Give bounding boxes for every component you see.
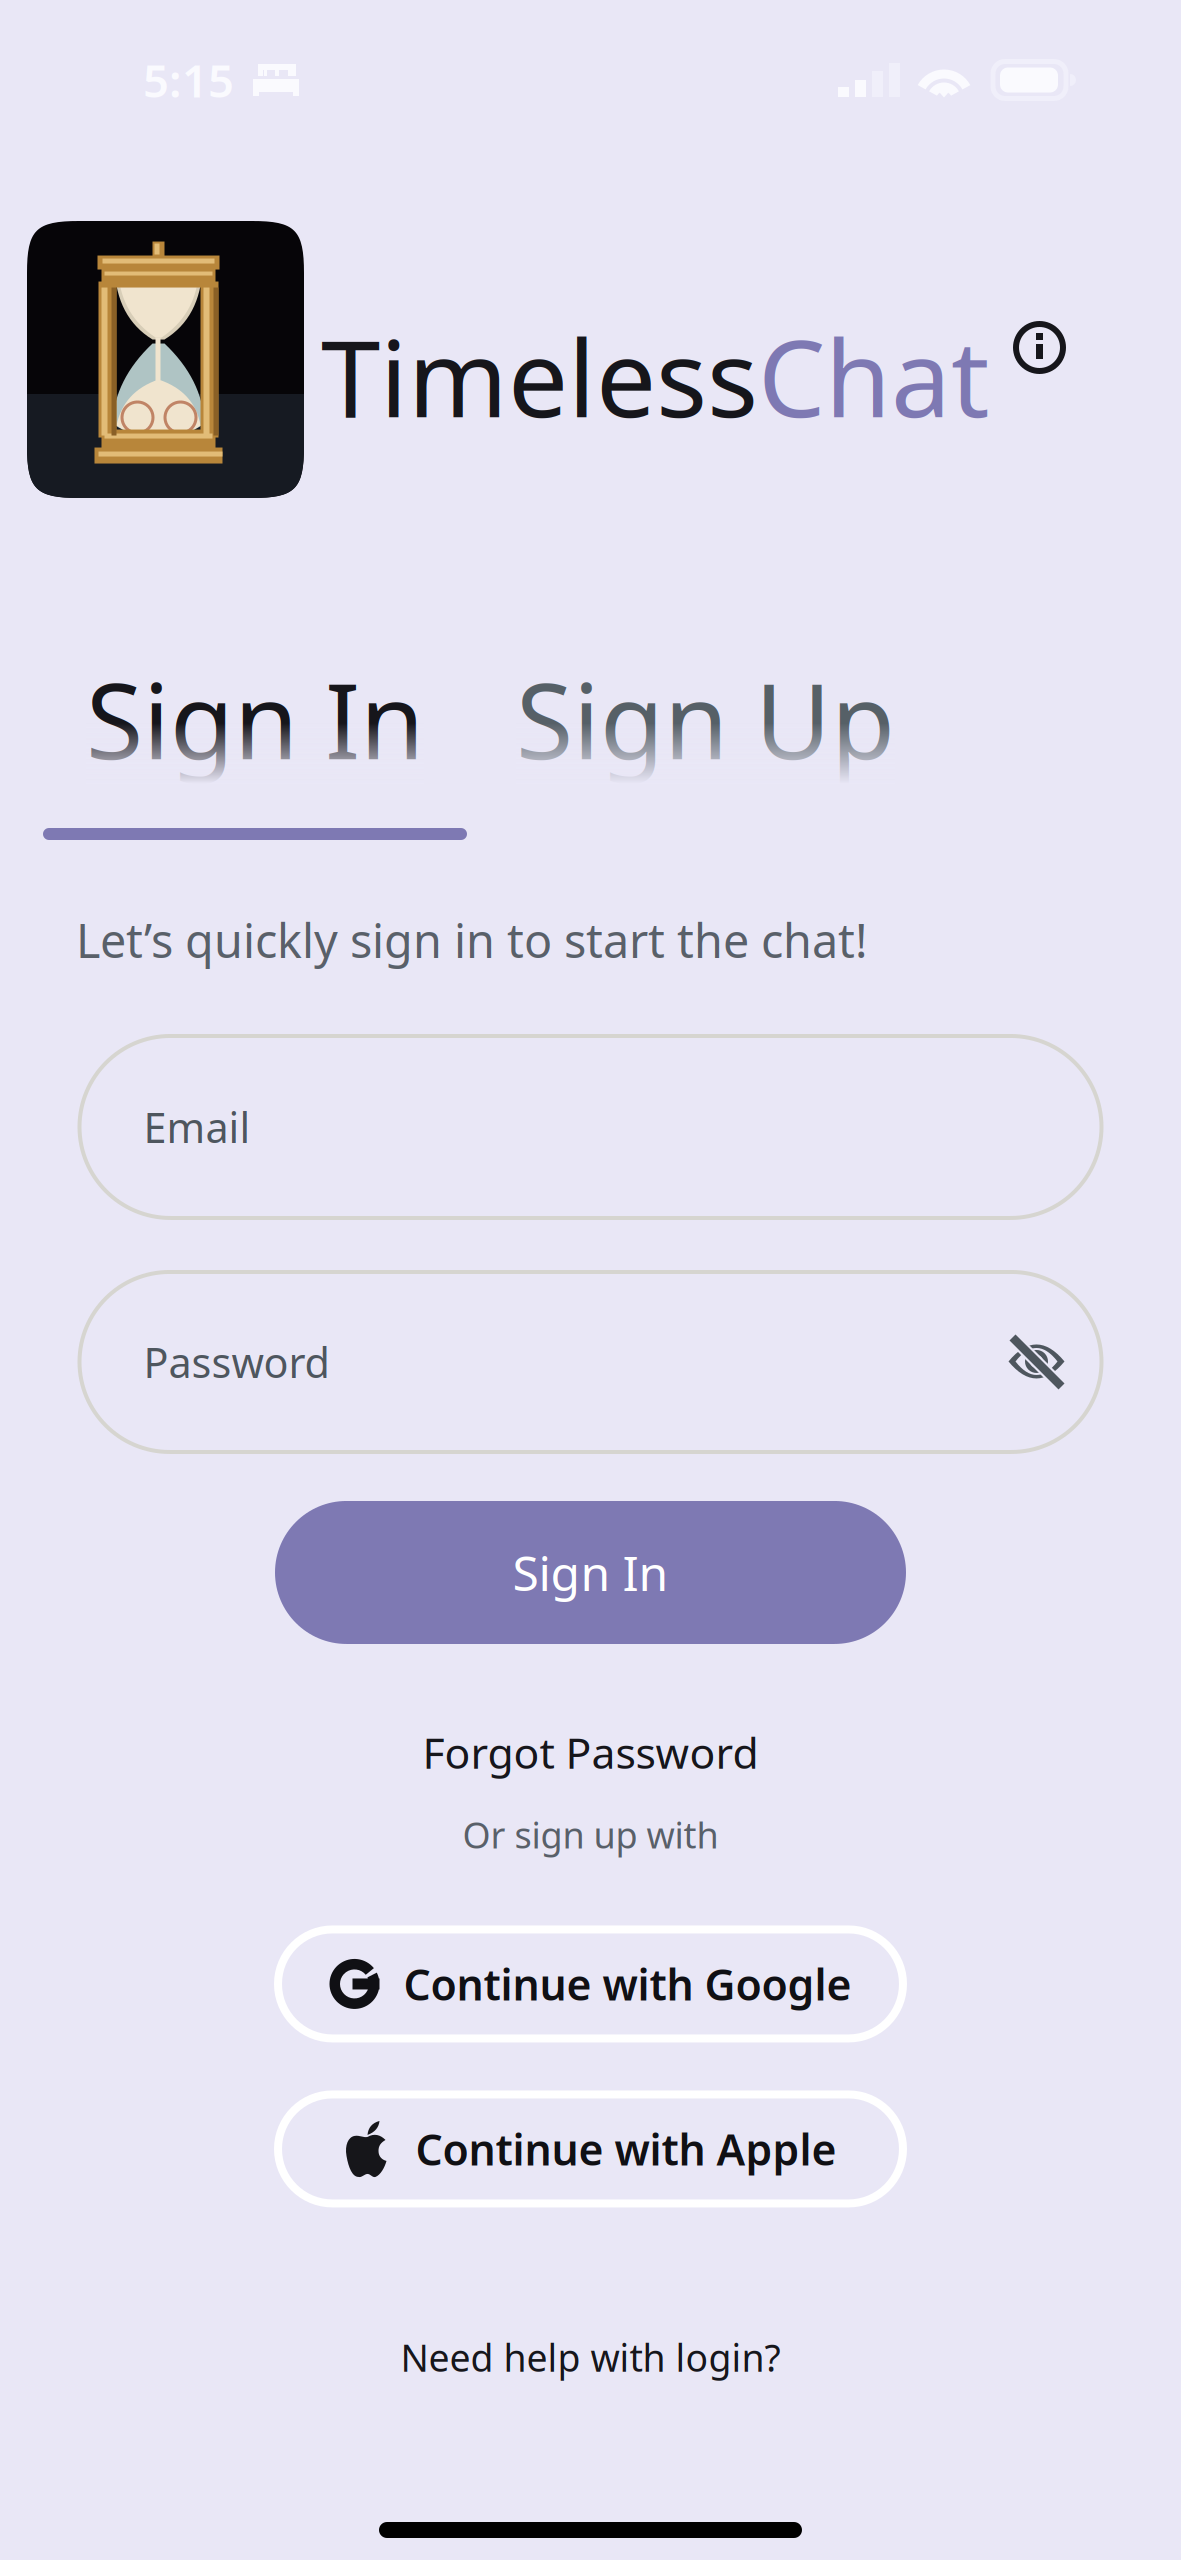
staticText: Need help with login?: [400, 2332, 780, 2382]
button[interactable]: Sign In: [275, 1501, 906, 1644]
staticText: Chat: [758, 305, 990, 447]
staticText: Forgot Password: [422, 1724, 758, 1781]
staticText: Sign In: [86, 650, 424, 788]
button[interactable]: Forgot Password: [422, 1724, 758, 1781]
button[interactable]: Continue with Google: [278, 1929, 903, 2038]
button[interactable]: Sign Up: [516, 650, 895, 840]
staticText: Or sign up with: [462, 1811, 718, 1858]
staticText: Sign In: [512, 1541, 668, 1604]
staticText: 5:15: [143, 50, 234, 110]
staticText: Password: [143, 1334, 329, 1389]
button[interactable]: Need help with login?: [400, 2332, 780, 2382]
staticText: Continue with Apple: [415, 2121, 836, 2177]
staticText: Sign Up: [516, 650, 895, 788]
button[interactable]: Continue with Apple: [278, 2094, 903, 2203]
button[interactable]: About TimelessChat: [1013, 321, 1066, 374]
staticText: Continue with Google: [403, 1956, 851, 2012]
staticText: Let’s quickly sign in to start the chat!: [76, 909, 868, 971]
staticText: Timeless: [321, 305, 758, 447]
button[interactable]: Sign In: [43, 650, 467, 840]
staticText: Email: [143, 1099, 250, 1154]
